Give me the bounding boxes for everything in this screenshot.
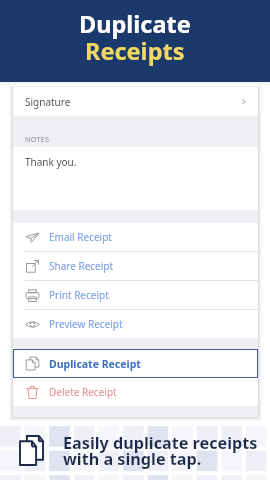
staticText: Thank you. [25,155,77,169]
button[interactable]: Share Receipt [13,252,258,280]
staticText: NOTES [25,134,50,144]
staticText: Easily duplicate receipts [63,432,258,454]
button[interactable]: Preview Receipt [13,310,258,338]
staticText: Duplicate [79,8,191,40]
staticText: Receipts [85,35,185,67]
staticText: Duplicate Receipt [49,357,141,371]
staticText: Email Receipt [49,230,112,244]
button[interactable]: Print Receipt [13,281,258,309]
staticText: Print Receipt [49,288,109,302]
staticText: Delete Receipt [49,385,117,399]
button[interactable]: Signature [13,87,258,116]
staticText: Preview Receipt [49,317,123,331]
button[interactable]: Delete Receipt [13,378,258,406]
staticText: Share Receipt [49,259,114,273]
button[interactable]: Duplicate Receipt [13,349,258,378]
staticText: Signature [25,95,71,109]
staticText: with a single tap. [63,448,202,470]
button[interactable]: Email Receipt [13,223,258,251]
